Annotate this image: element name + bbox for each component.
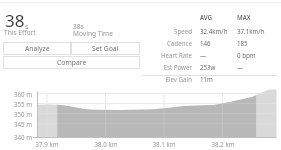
button[interactable]: Analyze [3, 42, 71, 55]
staticText: Elev Gain [132, 75, 192, 83]
staticText: 38.0 km [89, 140, 123, 148]
staticText: This Effort [4, 28, 36, 37]
staticText: — [200, 51, 207, 59]
staticText: 32.4km/h [200, 27, 228, 35]
staticText: 185 [237, 39, 248, 47]
staticText: Est Power [132, 63, 192, 71]
staticText: 345 m [8, 120, 32, 128]
staticText: Moving Time [73, 29, 113, 38]
staticText: AVG [200, 13, 213, 21]
staticText: Heart Rate [132, 51, 192, 59]
staticText: 360 m [8, 90, 32, 98]
staticText: 355 m [8, 100, 32, 108]
staticText: 38.1 km [147, 140, 181, 148]
staticText: 146 [200, 39, 211, 47]
staticText: 38s [73, 22, 84, 31]
staticText: s [25, 21, 29, 31]
staticText: Compare [57, 58, 87, 67]
staticText: 38.2 km [206, 140, 240, 148]
staticText: Cadence [132, 39, 192, 47]
staticText: 0 bpm [237, 51, 256, 59]
staticText: 350 m [8, 110, 32, 118]
staticText: 340 m [8, 133, 32, 141]
staticText: Speed [132, 27, 192, 35]
staticText: 38 [5, 9, 25, 32]
button[interactable]: Set Goal [71, 42, 140, 55]
staticText: MAX [237, 13, 251, 21]
staticText: Set Goal [92, 44, 119, 53]
staticText: — [237, 63, 244, 71]
button[interactable]: Compare [3, 56, 140, 69]
staticText: 37.1km/h [237, 27, 265, 35]
staticText: 37.9 km [30, 140, 64, 148]
staticText: 11m [200, 75, 213, 83]
staticText: 253w [200, 63, 216, 71]
staticText: Analyze [25, 44, 50, 53]
